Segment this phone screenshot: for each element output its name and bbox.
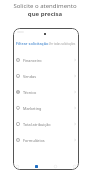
button[interactable]: Solicitações [32, 162, 40, 170]
button[interactable]: Total atribuição [13, 116, 79, 132]
button[interactable]: Chat [51, 162, 59, 170]
staticText: Solicite o atendimento que precisa [13, 2, 77, 17]
button[interactable]: Vendas [13, 68, 79, 84]
button[interactable]: Marketing [13, 100, 79, 116]
staticText: Ver todas solicitações [49, 42, 76, 46]
button[interactable]: Perfil [70, 162, 78, 170]
button[interactable]: Formulários [13, 132, 79, 148]
staticText: Marketing [23, 106, 42, 111]
button[interactable]: Início [13, 162, 21, 170]
button[interactable]: Financeiro [13, 52, 79, 68]
staticText: Filtrar solicitação [16, 41, 49, 46]
button[interactable]: Técnico [13, 84, 79, 100]
staticText: Vendas [23, 74, 36, 79]
staticText: Financeiro [23, 58, 42, 63]
staticText: Técnico [23, 90, 37, 95]
staticText: Total atribuição [23, 122, 51, 127]
staticText: Formulários [23, 138, 45, 143]
